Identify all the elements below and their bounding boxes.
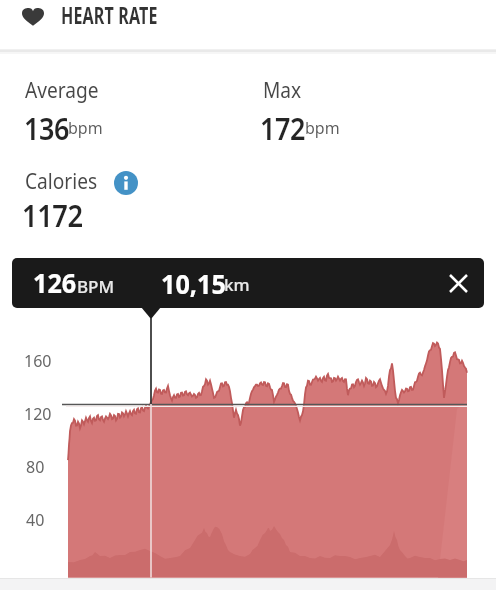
button[interactable] (441, 266, 475, 300)
staticText: 126 (33, 265, 77, 300)
staticText: 80 (26, 456, 45, 478)
staticText: BPM (77, 275, 115, 298)
button[interactable] (114, 171, 138, 195)
button[interactable]: HEART RATE (0, 0, 496, 49)
staticText: bpm (305, 117, 340, 139)
staticText: Calories (25, 165, 97, 195)
staticText: bpm (68, 117, 103, 139)
staticText: Average (25, 74, 99, 104)
staticText: km (224, 273, 250, 296)
staticText: 172 (260, 107, 305, 149)
staticText: 160 (24, 350, 52, 372)
button[interactable]: 126 (12, 258, 484, 308)
staticText: 10,15 (161, 266, 226, 301)
staticText: Max (263, 74, 301, 104)
staticText: 136 (24, 107, 69, 149)
staticText: 40 (26, 509, 45, 531)
staticText: 120 (24, 403, 52, 425)
staticText: 1172 (22, 194, 83, 236)
staticText: HEART RATE (61, 0, 158, 31)
